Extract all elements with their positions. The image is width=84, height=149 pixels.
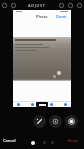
button[interactable]: Tabs <box>64 103 67 106</box>
button[interactable]: Forward <box>31 103 34 106</box>
staticText: ADJUST <box>28 3 46 8</box>
button[interactable]: Bookmarks <box>50 103 53 106</box>
button[interactable]: More options <box>75 1 84 10</box>
button[interactable]: Cancel <box>3 138 16 143</box>
staticText: Photo <box>36 14 48 19</box>
button[interactable]: Crop <box>49 115 62 128</box>
button[interactable]: Undo <box>57 1 66 10</box>
button[interactable]: Close <box>0 1 9 10</box>
button[interactable]: Redo <box>66 1 75 10</box>
button[interactable]: Back <box>17 103 20 106</box>
button[interactable]: Share <box>36 102 48 107</box>
button[interactable]: Reset <box>68 138 79 143</box>
button[interactable]: Light <box>65 115 78 128</box>
button[interactable]: Enhance <box>33 115 46 128</box>
button[interactable]: Compare original <box>9 1 18 10</box>
button[interactable]: Done <box>56 14 67 19</box>
